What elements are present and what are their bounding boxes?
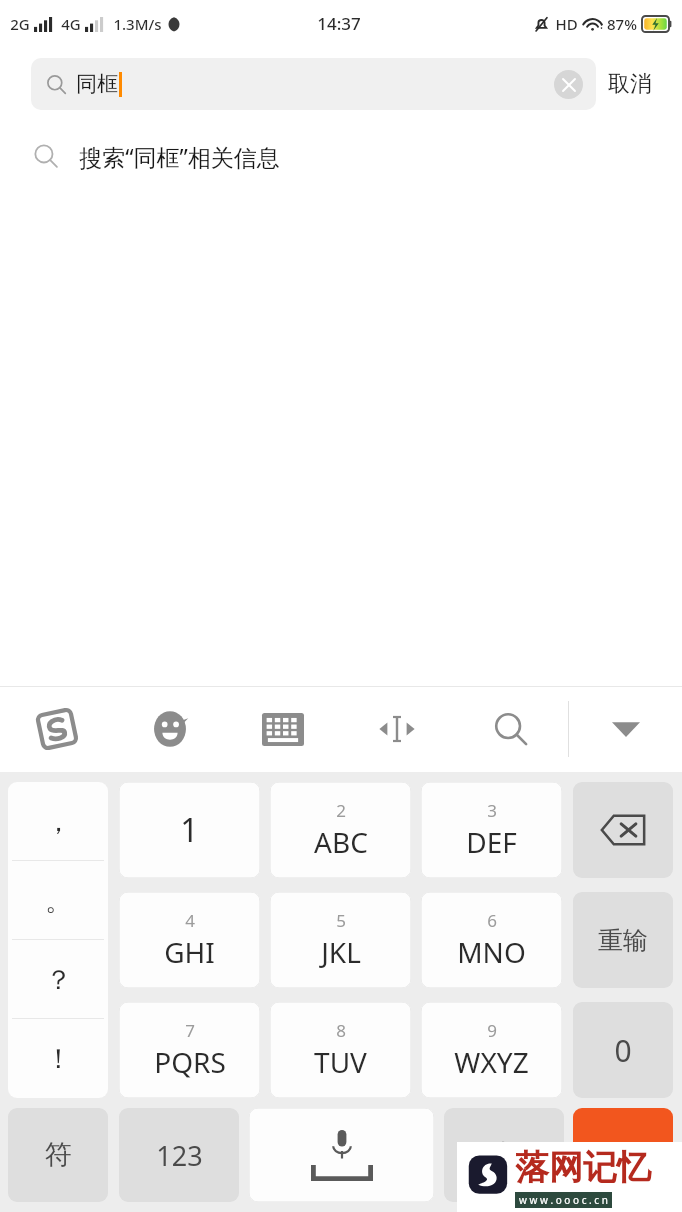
staticText: 7 [185,1019,195,1042]
button[interactable]: 重输 [573,892,673,988]
button[interactable]: Emoji [113,686,226,772]
button[interactable]: 符 [8,1108,108,1202]
button[interactable]: 取消 [596,58,664,110]
button[interactable]: 5 [270,892,411,988]
button[interactable]: ！ [8,1019,108,1098]
staticText: PQRS [154,1043,226,1081]
staticText: HD [555,14,578,34]
staticText: 落网记忆 [515,1146,651,1189]
button[interactable]: ， [8,782,108,861]
staticText: 123 [156,1137,203,1174]
staticText: 搜索“同框”相关信息 [79,141,280,172]
button[interactable]: Move cursor [340,686,454,772]
button[interactable]: Backspace [573,782,673,878]
staticText: 同框 [76,71,118,97]
staticText: 重输 [598,925,648,956]
staticText: 1.3M/s [113,14,162,34]
staticText: 6 [487,909,497,932]
staticText: MNO [457,933,526,971]
staticText: ？ [45,963,72,997]
button[interactable]: Hide keyboard [569,686,682,772]
staticText: 9 [487,1019,497,1042]
staticText: GHI [164,933,215,971]
button[interactable]: 7 [119,1002,260,1098]
button[interactable]: 搜索“同框”相关信息 [0,120,682,192]
staticText: 3 [487,799,497,822]
button[interactable]: Space, voice input [249,1108,434,1202]
button[interactable]: 1 [119,782,260,878]
button[interactable]: 中 [444,1108,564,1202]
staticText: 。 [45,884,72,918]
staticText: 4 [185,909,195,932]
staticText: ！ [45,1042,72,1076]
staticText: WXYZ [454,1043,529,1081]
button[interactable]: Enter [573,1108,673,1202]
staticText: ， [45,805,72,839]
button[interactable]: Keyboard layout [226,686,340,772]
staticText: 2G [10,14,30,34]
button[interactable]: 8 [270,1002,411,1098]
staticText: 4G [61,14,81,34]
button[interactable]: 3 [421,782,562,878]
staticText: ABC [314,823,368,861]
button[interactable]: Search [454,686,568,772]
button[interactable]: 9 [421,1002,562,1098]
staticText: DEF [466,823,517,861]
button[interactable]: 同框 [31,58,596,110]
button[interactable]: Sogou input method [0,686,113,772]
button[interactable]: Clear text [554,70,583,99]
button[interactable]: 。 [8,861,108,940]
staticText: 14:37 [317,12,361,35]
staticText: 符 [45,1138,72,1172]
button[interactable]: ？ [8,940,108,1019]
staticText: 0 [614,1030,632,1071]
staticText: JKL [321,933,361,971]
staticText: 8 [336,1019,346,1042]
button[interactable]: 0 [573,1002,673,1098]
button[interactable]: 4 [119,892,260,988]
staticText: 中 [491,1138,518,1172]
button[interactable]: 123 [119,1108,239,1202]
staticText: 5 [336,909,346,932]
staticText: 87% [607,14,637,34]
staticText: 取消 [608,70,652,98]
staticText: TUV [314,1043,367,1081]
staticText: w w w . o o o c . c n [519,1193,608,1207]
button[interactable]: 2 [270,782,411,878]
staticText: 1 [180,808,199,852]
button[interactable]: 6 [421,892,562,988]
staticText: 2 [336,799,346,822]
